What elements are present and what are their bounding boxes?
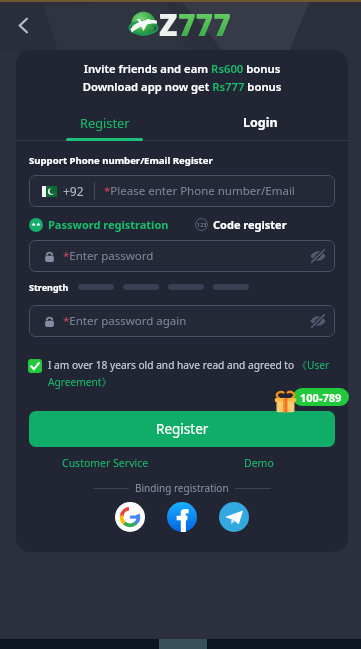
staticText: Login xyxy=(243,114,278,131)
staticText: Invite friends and eam Rs600 bonus xyxy=(16,61,348,76)
staticText: Demo xyxy=(244,456,274,470)
button[interactable]: Sign in with Facebook xyxy=(167,502,197,532)
button[interactable]: Login xyxy=(212,114,309,141)
staticText: *Please enter Phone number/Email xyxy=(104,183,295,199)
staticText: *Enter password xyxy=(63,248,154,264)
staticText: Download app now get Rs777 bonus xyxy=(16,79,348,94)
button[interactable]: Sign in with Google xyxy=(115,502,145,532)
staticText: 123 xyxy=(197,221,207,228)
staticText: I am over 18 years old and have read and… xyxy=(48,358,334,389)
staticText: 777 xyxy=(178,4,231,45)
staticText: Z xyxy=(159,4,178,45)
button[interactable]: Back xyxy=(6,8,40,42)
button[interactable]: Sign in with Telegram xyxy=(219,502,249,532)
button[interactable]: *Enter password xyxy=(29,240,335,272)
button[interactable]: 100-789 xyxy=(300,388,342,406)
staticText: +92 xyxy=(63,183,84,199)
button[interactable]: Show password xyxy=(305,308,331,334)
button[interactable]: Register xyxy=(29,411,335,447)
staticText: *Enter password again xyxy=(63,313,187,329)
button[interactable]: Password registration xyxy=(29,217,169,232)
staticText: Strength xyxy=(29,281,69,293)
button[interactable]: Show password xyxy=(305,243,331,269)
staticText: Support Phone number/Email Register xyxy=(29,154,213,167)
staticText: Register xyxy=(80,114,130,131)
staticText: Register xyxy=(156,420,209,438)
button[interactable]: Customer Service xyxy=(29,456,182,470)
staticText: 100-789 xyxy=(300,390,342,405)
button[interactable]: I am over 18 years old and have read and… xyxy=(28,358,334,389)
staticText: Binding registration xyxy=(135,481,229,495)
button[interactable]: 123 xyxy=(195,217,287,232)
button[interactable]: Register xyxy=(56,114,153,141)
staticText: Code register xyxy=(213,217,287,232)
staticText: Customer Service xyxy=(62,456,149,470)
staticText: Password registration xyxy=(48,217,169,232)
button[interactable]: *Enter password again xyxy=(29,305,335,337)
button[interactable]: +92 xyxy=(29,175,335,207)
button[interactable]: Demo xyxy=(182,456,335,470)
